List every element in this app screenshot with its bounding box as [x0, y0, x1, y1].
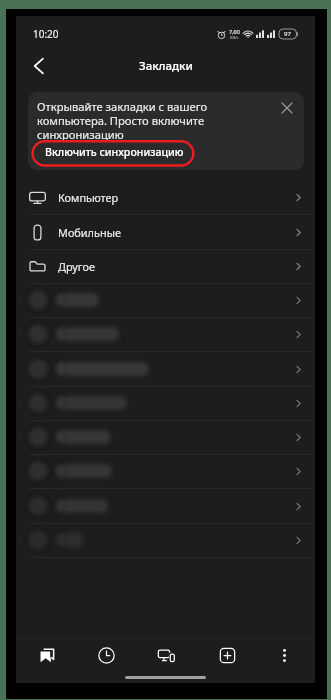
button[interactable]	[16, 352, 315, 386]
button[interactable]: Close	[275, 96, 299, 120]
button[interactable]	[16, 523, 315, 557]
staticText: 7,00	[229, 28, 240, 35]
button[interactable]: Включить синхронизацию	[39, 140, 190, 163]
button[interactable]: Back	[24, 51, 54, 81]
button[interactable]: History	[90, 639, 122, 671]
staticText: 97	[284, 30, 291, 38]
button[interactable]: Компьютер	[16, 180, 315, 214]
staticText: Мобильные	[58, 225, 121, 240]
button[interactable]: More	[268, 639, 300, 671]
button[interactable]	[16, 420, 315, 454]
button[interactable]	[16, 317, 315, 351]
button[interactable]: Мобильные	[16, 215, 315, 249]
button[interactable]: New tab	[211, 639, 243, 671]
button[interactable]: Devices	[150, 639, 182, 671]
staticText: Другое	[58, 259, 95, 274]
button[interactable]: Другое	[16, 249, 315, 283]
button[interactable]	[16, 489, 315, 523]
staticText: KB/s	[230, 35, 239, 40]
button[interactable]	[16, 454, 315, 488]
staticText: Закладки	[139, 58, 193, 74]
staticText: Открывайте закладки с вашего компьютера.…	[37, 99, 217, 142]
button[interactable]	[16, 386, 315, 420]
staticText: Включить синхронизацию	[45, 145, 184, 159]
button[interactable]	[16, 283, 315, 317]
button[interactable]: Bookmarks	[31, 639, 63, 671]
staticText: 10:20	[33, 27, 59, 41]
staticText: Компьютер	[58, 190, 119, 205]
